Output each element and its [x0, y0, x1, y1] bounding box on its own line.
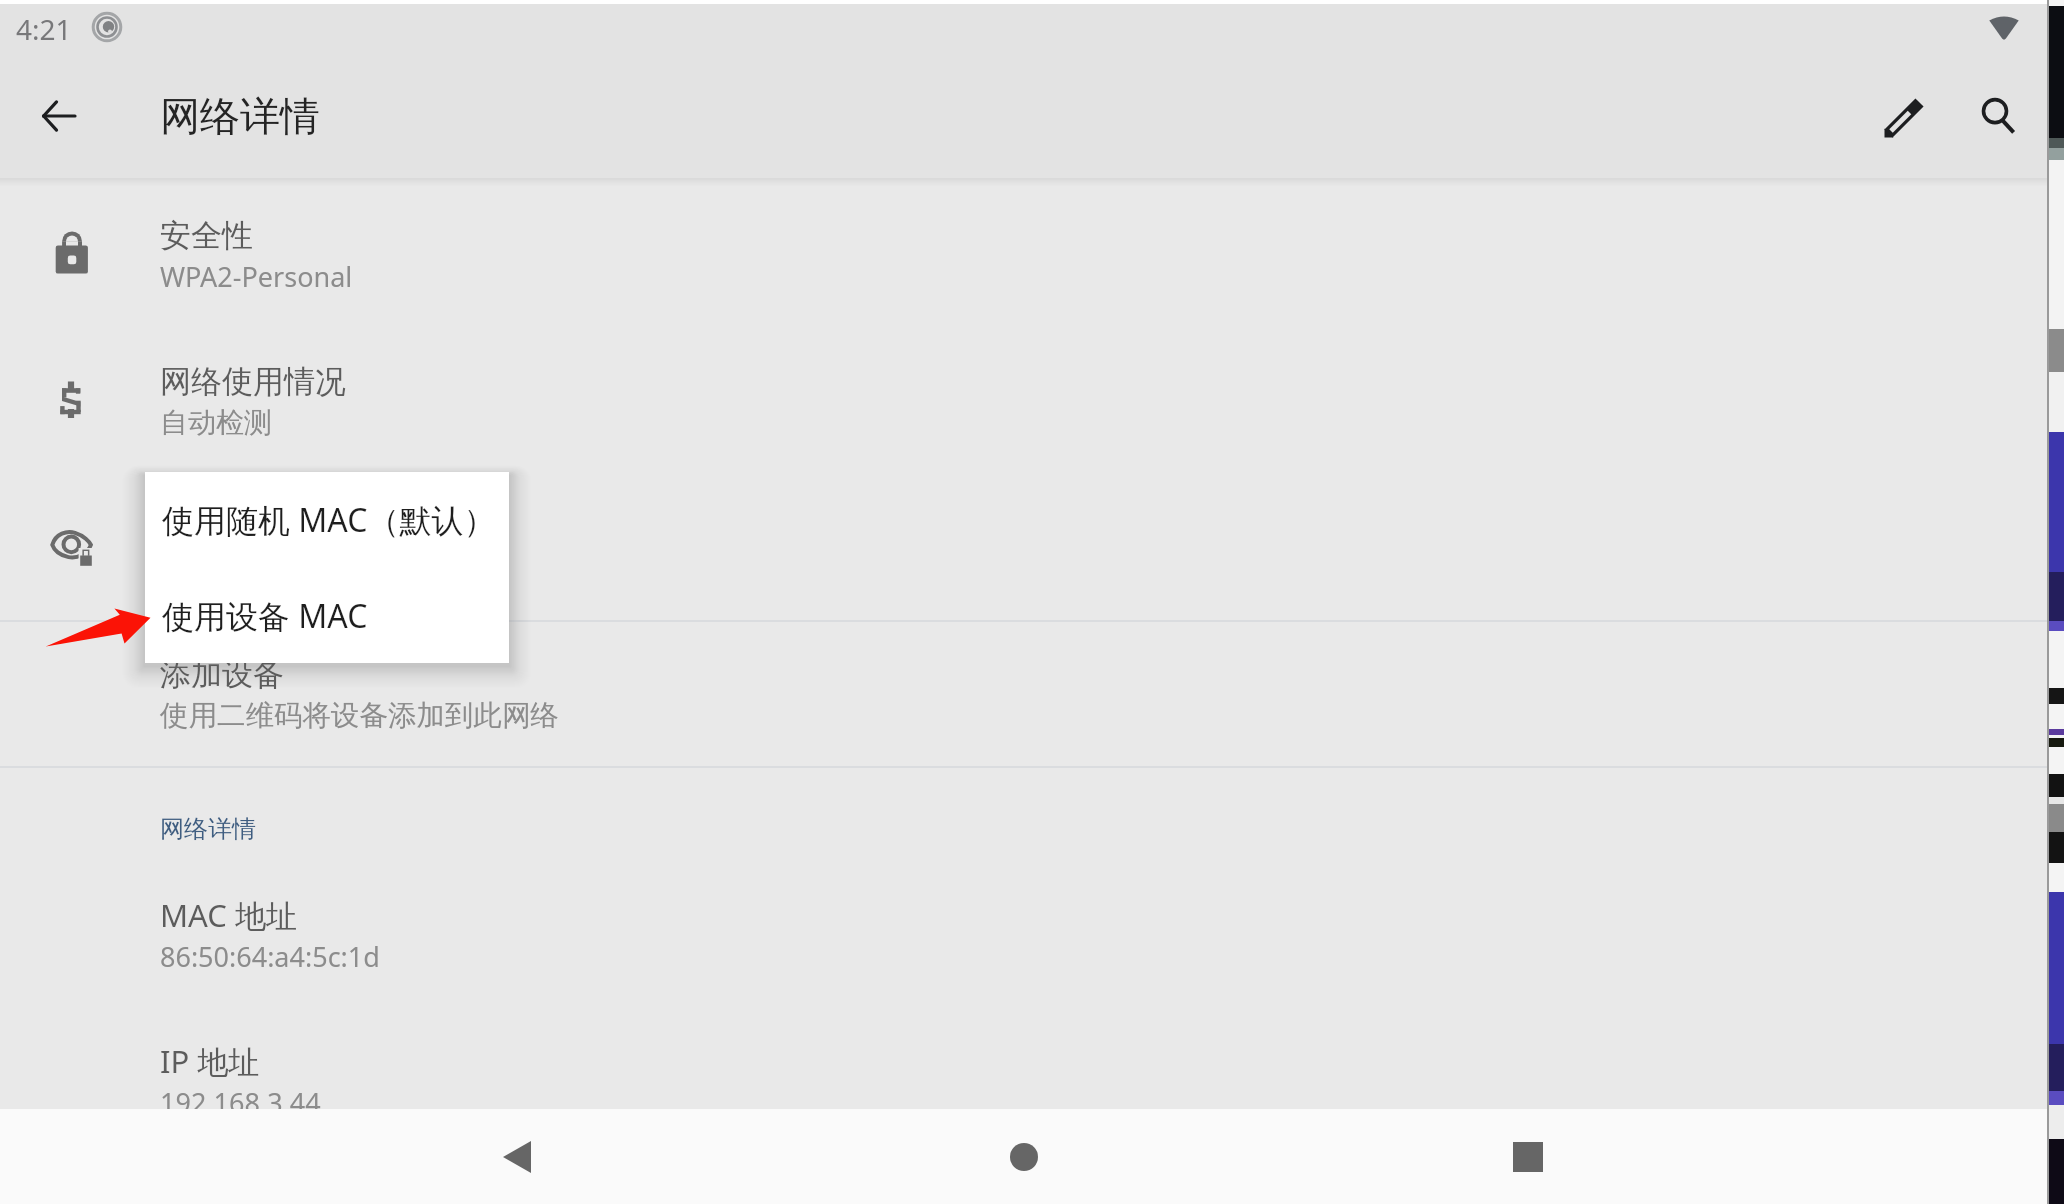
staticText: MAC 地址: [160, 894, 297, 936]
staticText: 自动检测: [160, 405, 272, 440]
staticText: 使用二维码将设备添加到此网络: [160, 698, 559, 734]
button[interactable]: MAC 地址 86:50:64:a4:5c:1d: [0, 860, 2048, 1006]
staticText: 网络详情: [160, 91, 320, 141]
button[interactable]: IP 地址 192.168.3.44: [0, 1006, 2048, 1109]
button[interactable]: Back: [452, 1109, 582, 1204]
staticText: IP 地址: [160, 1040, 260, 1082]
staticText: 使用随机 MAC（默认）: [162, 498, 496, 542]
button[interactable]: 使用设备 MAC: [145, 568, 509, 664]
staticText: WPA2-Personal: [160, 258, 353, 295]
button[interactable]: 隐私 MAC 地址类型: [0, 478, 2048, 620]
button[interactable]: Search: [1945, 57, 2045, 178]
button[interactable]: Edit: [1854, 57, 1954, 178]
button[interactable]: Recents: [1463, 1109, 1593, 1204]
staticText: 网络详情: [160, 814, 256, 844]
staticText: 192.168.3.44: [160, 1084, 321, 1121]
button[interactable]: 添加设备 使用二维码将设备添加到此网络: [0, 622, 2048, 766]
staticText: 网络使用情况: [160, 362, 346, 401]
staticText: 86:50:64:a4:5c:1d: [160, 938, 380, 975]
button[interactable]: 网络使用情况 自动检测: [0, 332, 2048, 478]
staticText: 添加设备: [160, 655, 284, 694]
staticText: 4:21: [16, 10, 72, 48]
button[interactable]: 安全性 WPA2-Personal: [0, 186, 2048, 332]
button[interactable]: Back: [28, 57, 88, 178]
staticText: 安全性: [160, 216, 253, 255]
staticText: 使用设备 MAC: [162, 594, 368, 638]
button[interactable]: Home: [959, 1109, 1089, 1204]
button[interactable]: 使用随机 MAC（默认）: [145, 472, 509, 568]
